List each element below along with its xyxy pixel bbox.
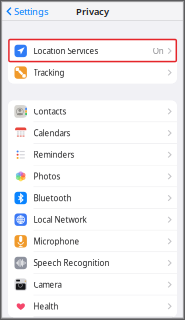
staticText: Calendars (33, 128, 70, 138)
button[interactable]: Health (8, 295, 177, 317)
staticText: Tracking (33, 67, 64, 78)
button[interactable]: Contacts (8, 101, 177, 122)
staticText: Health (33, 301, 58, 312)
staticText: Contacts (33, 106, 66, 117)
staticText: On (153, 46, 164, 56)
staticText: Camera (33, 279, 61, 290)
button[interactable]: Bluetooth (8, 187, 177, 209)
staticText: Settings (14, 5, 48, 17)
staticText: Reminders (33, 149, 74, 160)
button[interactable]: Speech Recognition (8, 252, 177, 274)
button[interactable]: Calendars (8, 122, 177, 144)
staticText: Microphone (33, 236, 79, 247)
button[interactable]: Photos (8, 166, 177, 187)
staticText: Privacy (76, 5, 109, 17)
staticText: Speech Recognition (33, 258, 109, 268)
button[interactable]: Location Services (8, 40, 177, 62)
button[interactable]: Settings (2, 2, 52, 20)
staticText: Local Network (33, 214, 86, 225)
button[interactable]: Reminders (8, 144, 177, 165)
staticText: Bluetooth (33, 193, 71, 203)
button[interactable]: Microphone (8, 230, 177, 252)
staticText: Location Services (33, 46, 98, 56)
button[interactable]: Local Network (8, 209, 177, 230)
staticText: Photos (33, 171, 60, 182)
button[interactable]: Tracking (8, 62, 177, 83)
button[interactable]: Camera (8, 274, 177, 295)
